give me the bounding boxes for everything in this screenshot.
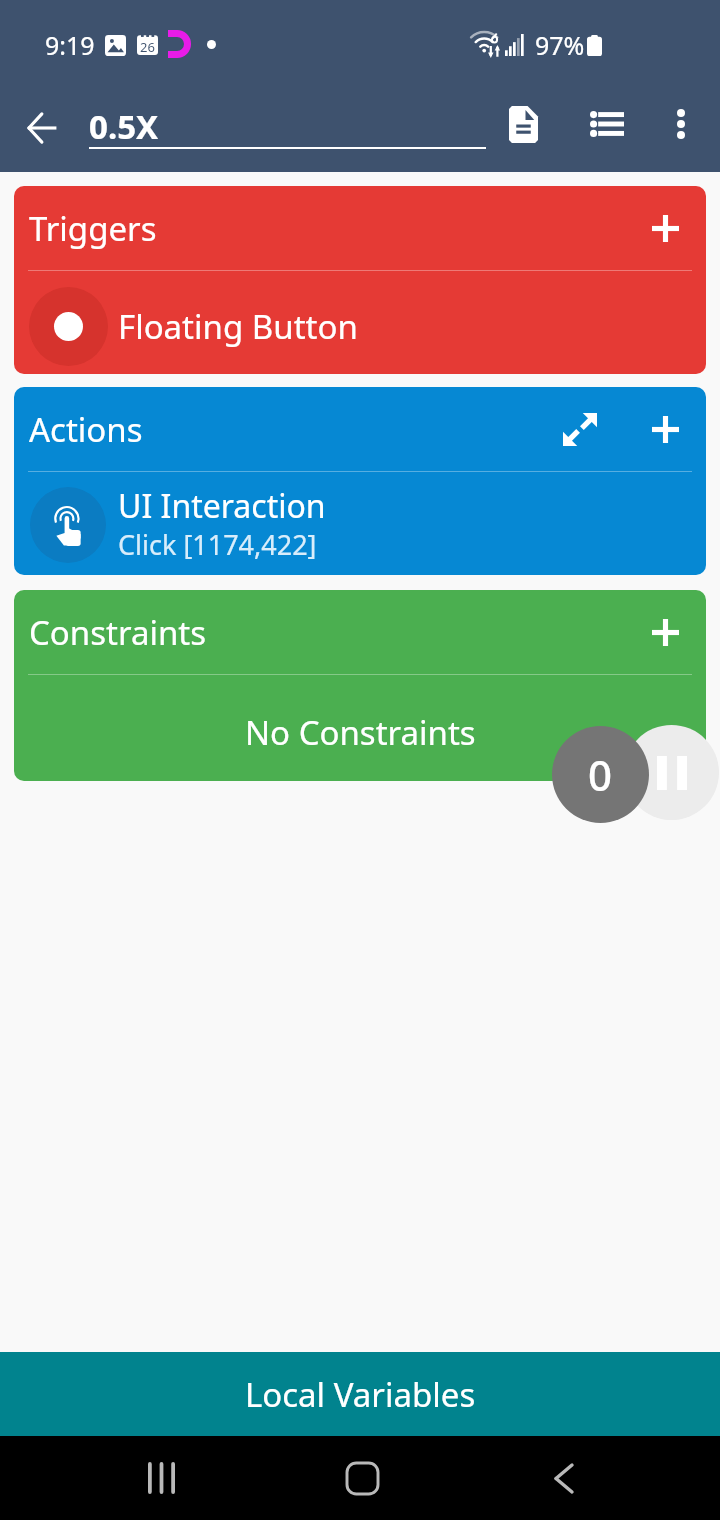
staticText: 26 xyxy=(140,38,155,56)
staticText: UI Interaction xyxy=(118,484,326,528)
staticText: 9:19 xyxy=(45,28,95,62)
staticText: 0 xyxy=(588,746,613,803)
staticText: Click [1174,422] xyxy=(118,526,317,563)
staticText: Local Variables xyxy=(245,1372,476,1417)
button[interactable]: Local Variables xyxy=(0,1352,720,1436)
button[interactable]: UI Interaction xyxy=(14,472,706,575)
button[interactable]: More options xyxy=(646,89,716,159)
staticText: 97% xyxy=(535,28,585,62)
staticText: No Constraints xyxy=(245,710,476,755)
button[interactable]: Floating Button xyxy=(14,271,706,374)
button[interactable]: Home xyxy=(327,1436,397,1520)
button[interactable]: Back xyxy=(529,1436,599,1520)
staticText: 0.5X xyxy=(89,104,159,149)
button[interactable]: Log xyxy=(488,89,558,159)
button[interactable]: Back xyxy=(17,103,67,153)
button[interactable]: Expand actions xyxy=(545,394,615,464)
button[interactable]: 0 xyxy=(552,726,649,823)
staticText: Floating Button xyxy=(118,304,358,349)
button[interactable]: Category list xyxy=(572,89,642,159)
button[interactable]: Recent apps xyxy=(126,1436,196,1520)
staticText: Constraints xyxy=(29,610,207,655)
button[interactable]: Add Actions xyxy=(630,394,700,464)
staticText: Triggers xyxy=(29,206,157,251)
button[interactable]: No Constraints xyxy=(14,675,706,781)
button[interactable]: Pause macro xyxy=(624,725,719,820)
button[interactable]: Add Triggers xyxy=(630,193,700,263)
button[interactable]: Add Constraints xyxy=(630,597,700,667)
staticText: Actions xyxy=(29,407,143,452)
